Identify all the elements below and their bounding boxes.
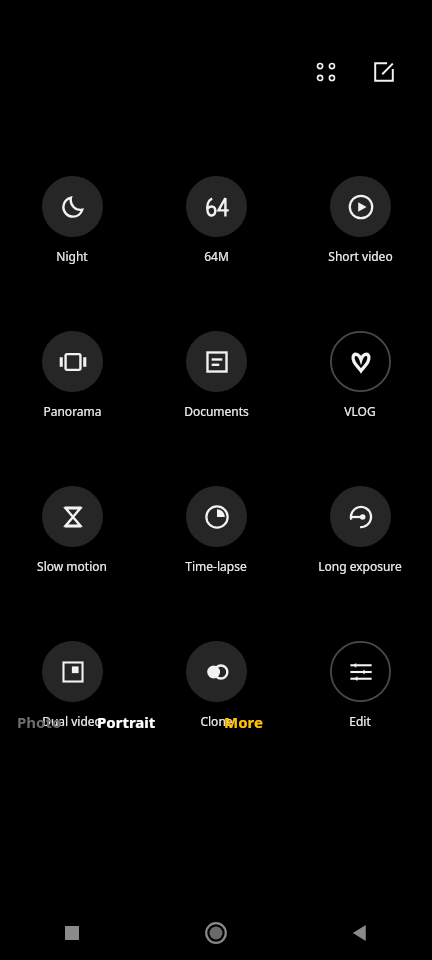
staticText: Short video	[328, 248, 393, 264]
button[interactable]: VLOG	[288, 331, 432, 419]
button[interactable]: Recents	[0, 906, 144, 960]
button[interactable]: 64M	[144, 176, 288, 264]
staticText: Documents	[184, 403, 249, 419]
button[interactable]: Portrait	[62, 706, 190, 738]
staticText: Photo	[17, 712, 62, 732]
staticText: Night	[56, 248, 88, 264]
staticText: 64M	[204, 248, 229, 264]
staticText: Long exposure	[318, 558, 402, 574]
button[interactable]: Long exposure	[288, 486, 432, 574]
staticText: Portrait	[97, 712, 156, 732]
button[interactable]: Documents	[144, 331, 288, 419]
button[interactable]: Photo	[0, 706, 62, 738]
button[interactable]: Edit modes	[362, 52, 406, 92]
staticText: Time-lapse	[185, 558, 247, 574]
button[interactable]: Modes grid	[304, 52, 348, 92]
staticText: Edit	[349, 713, 371, 729]
staticText: VLOG	[344, 403, 376, 419]
staticText: More	[224, 712, 263, 732]
button[interactable]: Panorama	[0, 331, 144, 419]
button[interactable]: Clone	[144, 641, 288, 729]
button[interactable]: Dual video	[0, 641, 144, 729]
staticText: Slow motion	[37, 558, 107, 574]
staticText: Panorama	[43, 403, 102, 419]
button[interactable]: Edit	[288, 641, 432, 729]
button[interactable]: Short video	[288, 176, 432, 264]
button[interactable]: Night	[0, 176, 144, 264]
button[interactable]: More	[190, 706, 296, 738]
button[interactable]: Home	[144, 906, 288, 960]
button[interactable]: Slow motion	[0, 486, 144, 574]
button[interactable]: Back	[288, 906, 432, 960]
staticText: Dual video	[42, 713, 102, 729]
button[interactable]: Time-lapse	[144, 486, 288, 574]
staticText: Clone	[200, 713, 233, 729]
